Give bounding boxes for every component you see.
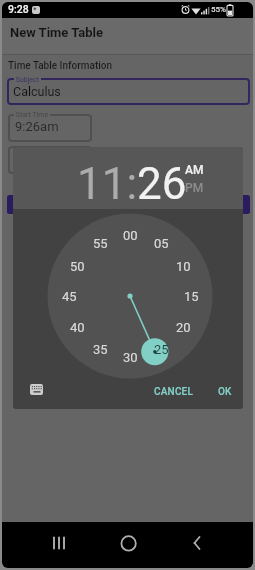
staticText: New Time Table <box>10 25 103 40</box>
button[interactable] <box>30 384 44 395</box>
button[interactable] <box>116 531 140 555</box>
button[interactable] <box>7 195 250 214</box>
button[interactable]: CANCEL <box>148 382 200 402</box>
staticText: 40 <box>70 320 85 335</box>
staticText: 20 <box>176 320 191 335</box>
staticText: Subject <box>14 76 41 84</box>
staticText: Time Table Information <box>8 60 113 72</box>
button[interactable]: OK <box>208 382 241 402</box>
staticText: 50 <box>70 259 85 274</box>
staticText: 11: <box>77 158 138 210</box>
staticText: 05 <box>154 236 169 251</box>
staticText: OK <box>218 386 232 398</box>
staticText: 25 <box>154 342 169 357</box>
button[interactable] <box>184 531 208 555</box>
staticText: 00 <box>123 228 138 243</box>
staticText: Calculus <box>13 84 61 99</box>
staticText: 9:28 <box>8 3 29 15</box>
staticText: 15 <box>184 289 199 304</box>
staticText: 45 <box>62 289 77 304</box>
button[interactable]: AM <box>183 163 205 177</box>
staticText: Start Time <box>14 111 50 119</box>
button[interactable]: PM <box>183 181 205 195</box>
staticText: CANCEL <box>154 386 194 398</box>
staticText: AM <box>185 163 204 177</box>
staticText: 9:26am <box>15 119 59 134</box>
staticText: PM <box>185 181 204 195</box>
staticText: 26 <box>137 158 187 210</box>
staticText: 55% <box>211 5 226 14</box>
staticText: 55 <box>93 236 108 251</box>
button[interactable] <box>46 531 70 555</box>
staticText: 10 <box>176 259 191 274</box>
button[interactable] <box>7 78 250 105</box>
staticText: 35 <box>93 342 108 357</box>
staticText: 30 <box>123 350 138 365</box>
button[interactable] <box>8 114 92 142</box>
